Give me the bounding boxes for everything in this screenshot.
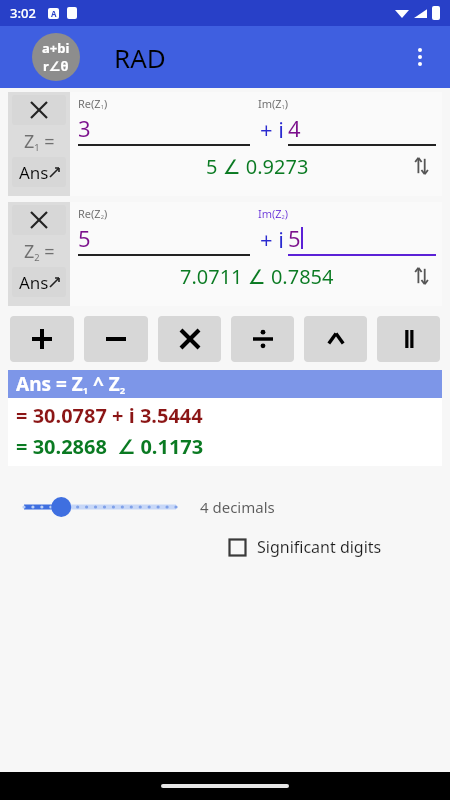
button[interactable]: Clear <box>12 95 66 125</box>
button[interactable]: Ans <box>12 157 66 187</box>
staticText: 5 <box>78 223 91 253</box>
staticText: 7.0711 ∠ 0.7854 <box>180 263 334 290</box>
button[interactable]: Swap notation <box>408 152 436 180</box>
staticText: 4 <box>288 113 301 143</box>
button[interactable]: Ans <box>12 267 66 297</box>
staticText: a+bi <box>42 39 70 57</box>
staticText: Ans <box>19 161 49 184</box>
button[interactable]: Add <box>10 316 74 362</box>
staticText: 5 <box>288 223 301 253</box>
staticText: A <box>51 8 57 19</box>
button[interactable]: Power <box>304 316 367 362</box>
button[interactable]: Clear <box>12 205 66 235</box>
button[interactable]: Significant digits <box>228 532 450 562</box>
button[interactable]: Multiply <box>158 316 221 362</box>
staticText: Significant digits <box>257 536 382 558</box>
button[interactable]: Ans = Z1 ^ Z2 <box>8 370 442 398</box>
staticText: 3 <box>78 113 91 143</box>
staticText: + i <box>260 114 284 144</box>
staticText: Re(Z2) <box>78 206 258 221</box>
staticText: RAD <box>114 40 166 75</box>
button[interactable]: Subtract <box>84 316 148 362</box>
staticText: 5 ∠ 0.9273 <box>206 153 309 180</box>
staticText: Z2 = <box>24 239 55 264</box>
staticText: Im(Z1) <box>258 96 289 111</box>
button[interactable]: Divide <box>231 316 294 362</box>
staticText: = 30.2868 ∠ 0.1173 <box>16 433 204 460</box>
staticText: 4 decimals <box>200 497 275 517</box>
staticText: 3:02 <box>10 4 36 22</box>
staticText: Ans = Z1 ^ Z2 <box>16 371 126 397</box>
button[interactable]: Decimals slider <box>24 490 176 524</box>
staticText: Im(Z2) <box>258 206 289 221</box>
staticText: r∠θ <box>43 57 69 75</box>
button[interactable]: More options <box>400 37 440 77</box>
button[interactable]: Swap notation <box>408 262 436 290</box>
staticText: Ans <box>19 271 49 294</box>
button[interactable]: Parallel <box>377 316 440 362</box>
staticText: Re(Z1) <box>78 96 258 111</box>
staticText: + i <box>260 224 284 254</box>
staticText: Z1 = <box>24 129 55 154</box>
button[interactable]: Toggle notation <box>32 33 80 81</box>
staticText: = 30.0787 + i 3.5444 <box>16 402 203 429</box>
